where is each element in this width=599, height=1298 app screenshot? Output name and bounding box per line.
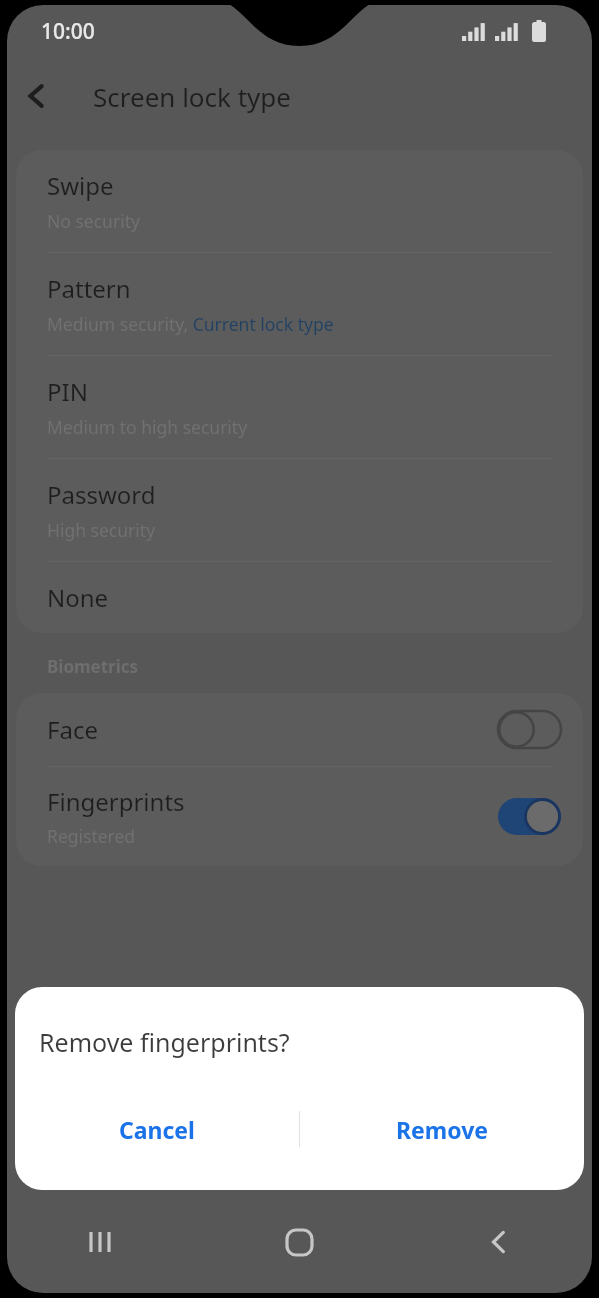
button[interactable]: Pattern [16,253,583,355]
staticText: Screen lock type [93,79,291,114]
button[interactable]: Face off [498,711,561,748]
staticText: None [47,581,109,614]
button[interactable]: Recents [0,1198,199,1286]
staticText: Registered [47,824,136,848]
staticText: No security [47,209,140,233]
staticText: Biometrics [47,655,139,678]
button[interactable]: Remove [300,1090,584,1168]
staticText: Remove fingerprints? [39,1025,290,1059]
staticText: Password [47,478,156,511]
button[interactable]: Cancel [15,1090,299,1168]
staticText: Fingerprints [47,785,185,818]
staticText: Remove [396,1114,489,1145]
staticText: PIN [47,375,88,408]
button[interactable]: Swipe [16,150,583,252]
staticText: Swipe [47,169,114,202]
staticText: Face [47,713,98,746]
button[interactable]: Back [7,66,67,126]
button[interactable]: PIN [16,356,583,458]
button[interactable]: Password [16,459,583,561]
staticText: Pattern [47,272,131,305]
staticText: Medium security, Current lock type [47,312,334,336]
staticText: High security [47,518,156,542]
button[interactable]: Face [16,693,583,766]
staticText: Medium to high security [47,415,248,439]
button[interactable]: Fingerprints [16,767,583,866]
button[interactable]: Back [399,1198,599,1286]
button[interactable]: Fingerprints on [498,798,561,835]
staticText: 10:00 [41,17,95,46]
staticText: Cancel [119,1114,195,1145]
button[interactable]: Home [199,1198,399,1286]
button[interactable]: None [16,562,583,633]
